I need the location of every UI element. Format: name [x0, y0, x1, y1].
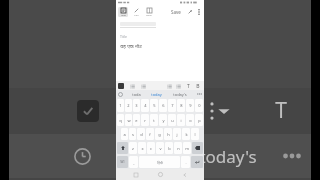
button[interactable]: d [137, 128, 145, 140]
button[interactable]: Checklist [118, 83, 124, 89]
button[interactable]: 4 [141, 99, 149, 112]
button[interactable]: x [138, 142, 146, 154]
staticText: i [180, 118, 182, 123]
button[interactable]: o [186, 114, 194, 126]
button[interactable]: Back [180, 170, 189, 179]
button[interactable]: Shift [117, 142, 128, 154]
staticText: q [119, 118, 122, 123]
staticText: 3 [135, 103, 138, 108]
staticText: Book [146, 13, 152, 16]
button[interactable]: Text [118, 7, 128, 17]
button[interactable]: Outdent [175, 83, 181, 89]
button[interactable]: i [177, 114, 185, 126]
staticText: z [132, 146, 134, 151]
button[interactable]: 1 [117, 99, 124, 112]
button[interactable]: t [150, 114, 158, 126]
button[interactable]: e [133, 114, 140, 126]
staticText: e [135, 118, 138, 123]
button[interactable]: 3 [133, 99, 140, 112]
button[interactable]: Enter [191, 156, 203, 168]
staticText: o [189, 118, 192, 123]
staticText: s [132, 132, 134, 137]
staticText: y [162, 118, 165, 123]
button[interactable]: 9 [186, 99, 194, 112]
button[interactable]: n [174, 142, 182, 154]
button[interactable]: More options [195, 8, 202, 15]
button[interactable]: Space [139, 156, 180, 168]
button[interactable]: 8 [177, 99, 185, 112]
button[interactable]: 7 [168, 99, 176, 112]
button[interactable]: m [183, 142, 191, 154]
staticText: 0 [198, 103, 201, 108]
staticText: u [171, 118, 174, 123]
button[interactable]: Bulleted list [143, 99, 167, 123]
button[interactable]: h [164, 128, 172, 140]
staticText: today's [173, 92, 187, 97]
staticText: 6 [162, 103, 165, 108]
button[interactable]: Book [144, 7, 154, 17]
button[interactable]: c [147, 142, 155, 154]
button[interactable]: Recents [131, 170, 140, 179]
staticText: r [144, 118, 146, 123]
staticText: v [159, 146, 162, 151]
staticText: n [177, 146, 180, 151]
button[interactable]: Pen [131, 7, 141, 17]
button[interactable]: Home [156, 170, 165, 179]
button[interactable]: Indent [166, 83, 172, 89]
button[interactable]: Pin [186, 8, 193, 15]
staticText: . [185, 160, 187, 165]
button[interactable]: Checklist [77, 100, 99, 122]
button[interactable]: Comma [129, 156, 138, 168]
button[interactable]: a [121, 128, 128, 140]
button[interactable]: 2 [125, 99, 132, 112]
staticText: 2 [127, 103, 130, 108]
button[interactable]: 5 [150, 99, 158, 112]
button[interactable]: s [129, 128, 136, 140]
staticText: !#1 [120, 160, 125, 164]
staticText: t [153, 118, 155, 123]
button[interactable]: Symbols [117, 156, 128, 168]
button[interactable]: z [129, 142, 137, 154]
staticText: today's [199, 145, 257, 168]
button[interactable]: Numbered list [140, 83, 146, 89]
staticText: Title [120, 34, 127, 39]
button[interactable]: g [155, 128, 163, 140]
button[interactable]: y [159, 114, 167, 126]
button[interactable]: Recent [71, 145, 93, 167]
button[interactable]: Save [169, 8, 183, 16]
button[interactable]: r [141, 114, 149, 126]
button[interactable]: today [150, 92, 163, 97]
button[interactable]: l [191, 128, 199, 140]
staticText: हिंदी [157, 160, 163, 165]
button[interactable]: today's [172, 92, 188, 97]
button[interactable]: p [195, 114, 203, 126]
button[interactable]: Recent [118, 92, 123, 97]
staticText: j [176, 132, 178, 137]
button[interactable]: b [165, 142, 173, 154]
staticText: d [140, 132, 143, 137]
staticText: l [194, 132, 196, 137]
button[interactable]: Text style [185, 83, 191, 89]
button[interactable]: q [117, 114, 124, 126]
button[interactable]: Text style [265, 96, 295, 126]
staticText: p [198, 118, 201, 123]
button[interactable]: k [182, 128, 190, 140]
button[interactable]: j [173, 128, 181, 140]
button[interactable]: 0 [195, 99, 203, 112]
staticText: 8 [180, 103, 183, 108]
button[interactable]: f [146, 128, 154, 140]
button[interactable]: 6 [159, 99, 167, 112]
button[interactable]: Bold [195, 83, 201, 89]
button[interactable]: w [125, 114, 132, 126]
button[interactable]: toda [131, 92, 142, 97]
staticText: 5 [153, 103, 156, 108]
button[interactable]: Bulleted list [129, 83, 135, 89]
button[interactable]: Backspace [192, 142, 203, 154]
button[interactable]: u [168, 114, 176, 126]
staticText: Pen [134, 13, 139, 16]
staticText: T [275, 96, 287, 125]
button[interactable]: v [156, 142, 164, 154]
staticText: f [149, 132, 151, 137]
staticText: x [141, 146, 144, 151]
